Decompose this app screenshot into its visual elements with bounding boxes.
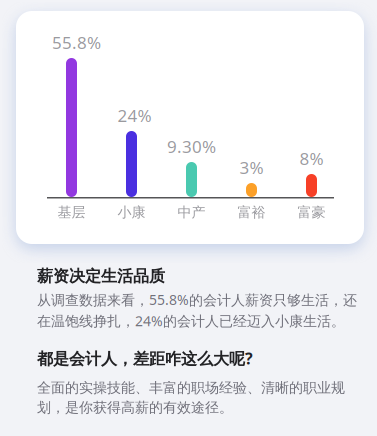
button[interactable]: 富裕 3% [221, 23, 281, 197]
button[interactable]: 富豪 8% [281, 23, 341, 197]
staticText: 富豪 [297, 203, 325, 221]
staticText: 9.30% [167, 135, 216, 158]
staticText: 3% [239, 156, 263, 179]
button[interactable]: 中产 9.30% [161, 23, 221, 197]
staticText: 富裕 [237, 203, 265, 221]
staticText: 中产 [177, 203, 205, 221]
staticText: 55.8% [52, 31, 101, 54]
staticText: 24% [117, 104, 151, 127]
staticText: 8% [299, 147, 323, 170]
staticText: 薪资决定生活品质 [37, 266, 165, 286]
staticText: 都是会计人，差距咋这么大呢? [37, 347, 253, 369]
button[interactable]: 基层 55.8% [41, 23, 101, 197]
button[interactable]: 小康 24% [101, 23, 161, 197]
staticText: 全面的实操技能、丰富的职场经验、清晰的职业规划，是你获得高薪的有效途径。 [37, 379, 345, 416]
staticText: 基层 [57, 203, 85, 221]
staticText: 从调查数据来看，55.8%的会计人薪资只够生活，还在温饱线挣扎，24%的会计人已… [37, 290, 357, 330]
staticText: 小康 [117, 203, 145, 221]
